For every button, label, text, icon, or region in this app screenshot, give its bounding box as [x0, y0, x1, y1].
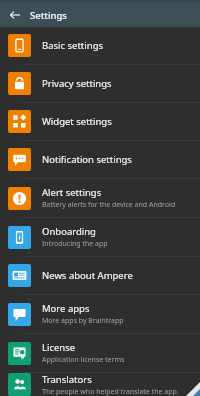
- button[interactable]: License: [0, 334, 200, 372]
- staticText: News about Ampere: [42, 269, 133, 282]
- staticText: License: [42, 341, 76, 354]
- staticText: Application license terms: [42, 355, 125, 365]
- button[interactable]: Alert settings: [0, 179, 200, 217]
- staticText: Settings: [30, 9, 67, 22]
- staticText: Onboarding: [42, 225, 96, 238]
- staticText: The people who helped translate the app.: [42, 387, 179, 396]
- staticText: Battery alerts for the device and Androi…: [42, 200, 192, 210]
- staticText: Basic settings: [42, 39, 104, 52]
- staticText: Notification settings: [42, 153, 132, 166]
- button[interactable]: Notification settings: [0, 141, 200, 178]
- button[interactable]: News about Ampere: [0, 257, 200, 294]
- button[interactable]: More apps: [0, 295, 200, 333]
- staticText: More apps by Braintrapp: [42, 316, 124, 326]
- staticText: Translators: [42, 373, 92, 386]
- button[interactable]: Translators: [0, 373, 200, 396]
- staticText: Widget settings: [42, 115, 112, 128]
- staticText: Introducing the app: [42, 239, 108, 249]
- staticText: Privacy settings: [42, 77, 112, 90]
- staticText: Alert settings: [42, 186, 102, 199]
- button[interactable]: Onboarding: [0, 218, 200, 256]
- button[interactable]: Widget settings: [0, 103, 200, 140]
- button[interactable]: Back: [0, 3, 30, 27]
- button[interactable]: Basic settings: [0, 27, 200, 64]
- button[interactable]: Privacy settings: [0, 65, 200, 102]
- staticText: More apps: [42, 302, 90, 315]
